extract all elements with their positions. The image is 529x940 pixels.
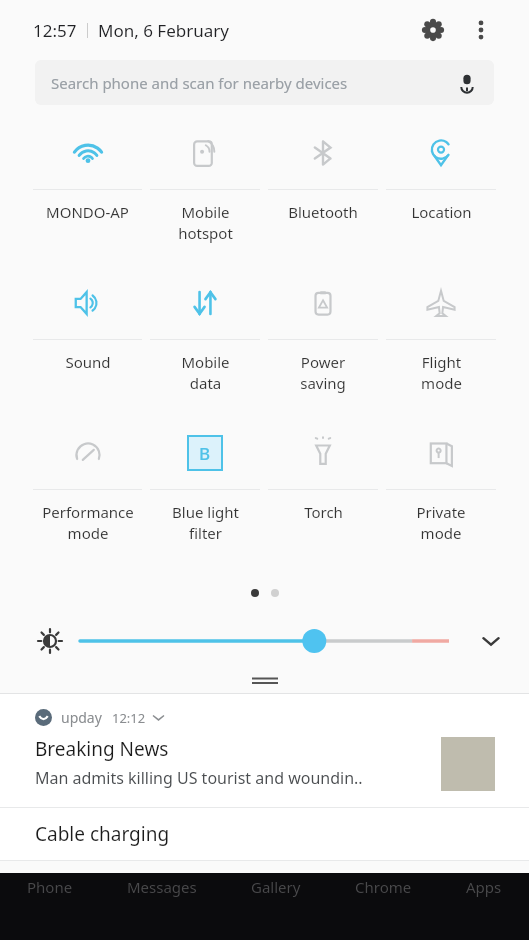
button[interactable]: Brightness	[80, 626, 449, 656]
staticText: Search phone and scan for nearby devices	[51, 73, 348, 93]
button[interactable]: Power saving	[268, 267, 378, 417]
staticText: Power saving	[300, 352, 346, 394]
staticText: Performance mode	[42, 502, 134, 544]
staticText: Sound	[65, 352, 111, 372]
button[interactable]: Search phone and scan for nearby devices	[35, 60, 494, 105]
staticText: Apps	[466, 877, 502, 897]
staticText: 12:12	[112, 709, 146, 727]
staticText: Messages	[127, 877, 197, 897]
staticText: upday	[61, 708, 102, 727]
button[interactable]: B	[150, 417, 260, 567]
staticText: Torch	[304, 502, 343, 522]
staticText: MONDO-AP	[46, 202, 129, 222]
staticText: Mon, 6 February	[98, 19, 229, 42]
staticText: Private mode	[416, 502, 466, 544]
button[interactable]: MONDO-AP	[33, 117, 142, 267]
staticText: Gallery	[251, 877, 301, 897]
button[interactable]: Expand brightness settings	[471, 623, 511, 659]
staticText: Mobile data	[181, 352, 230, 394]
button[interactable]: Cable charging	[0, 808, 529, 860]
button[interactable]: Flight mode	[386, 267, 496, 417]
button[interactable]: Private mode	[386, 417, 496, 567]
button[interactable]: Settings	[416, 13, 450, 47]
staticText: Chrome	[355, 877, 412, 897]
staticText: 12:57	[33, 19, 77, 42]
button[interactable]: Location	[386, 117, 496, 267]
button[interactable]: Mobile hotspot	[150, 117, 260, 267]
staticText: Location	[411, 202, 472, 222]
button[interactable]: Bluetooth	[268, 117, 378, 267]
staticText: Cable charging	[35, 821, 170, 847]
button[interactable]: upday	[0, 694, 529, 807]
staticText: B	[199, 442, 211, 465]
staticText: Man admits killing US tourist and woundi…	[35, 767, 363, 789]
staticText: Breaking News	[35, 736, 169, 762]
staticText: Phone	[27, 877, 73, 897]
staticText: Mobile hotspot	[178, 202, 233, 244]
staticText: Flight mode	[421, 352, 462, 394]
button[interactable]: Mobile data	[150, 267, 260, 417]
button[interactable]: More options	[466, 15, 496, 45]
button[interactable]: Sound	[33, 267, 142, 417]
button[interactable]: Torch	[268, 417, 378, 567]
staticText: Blue light filter	[172, 502, 239, 544]
staticText: Bluetooth	[288, 202, 358, 222]
button[interactable]: Performance mode	[33, 417, 142, 567]
